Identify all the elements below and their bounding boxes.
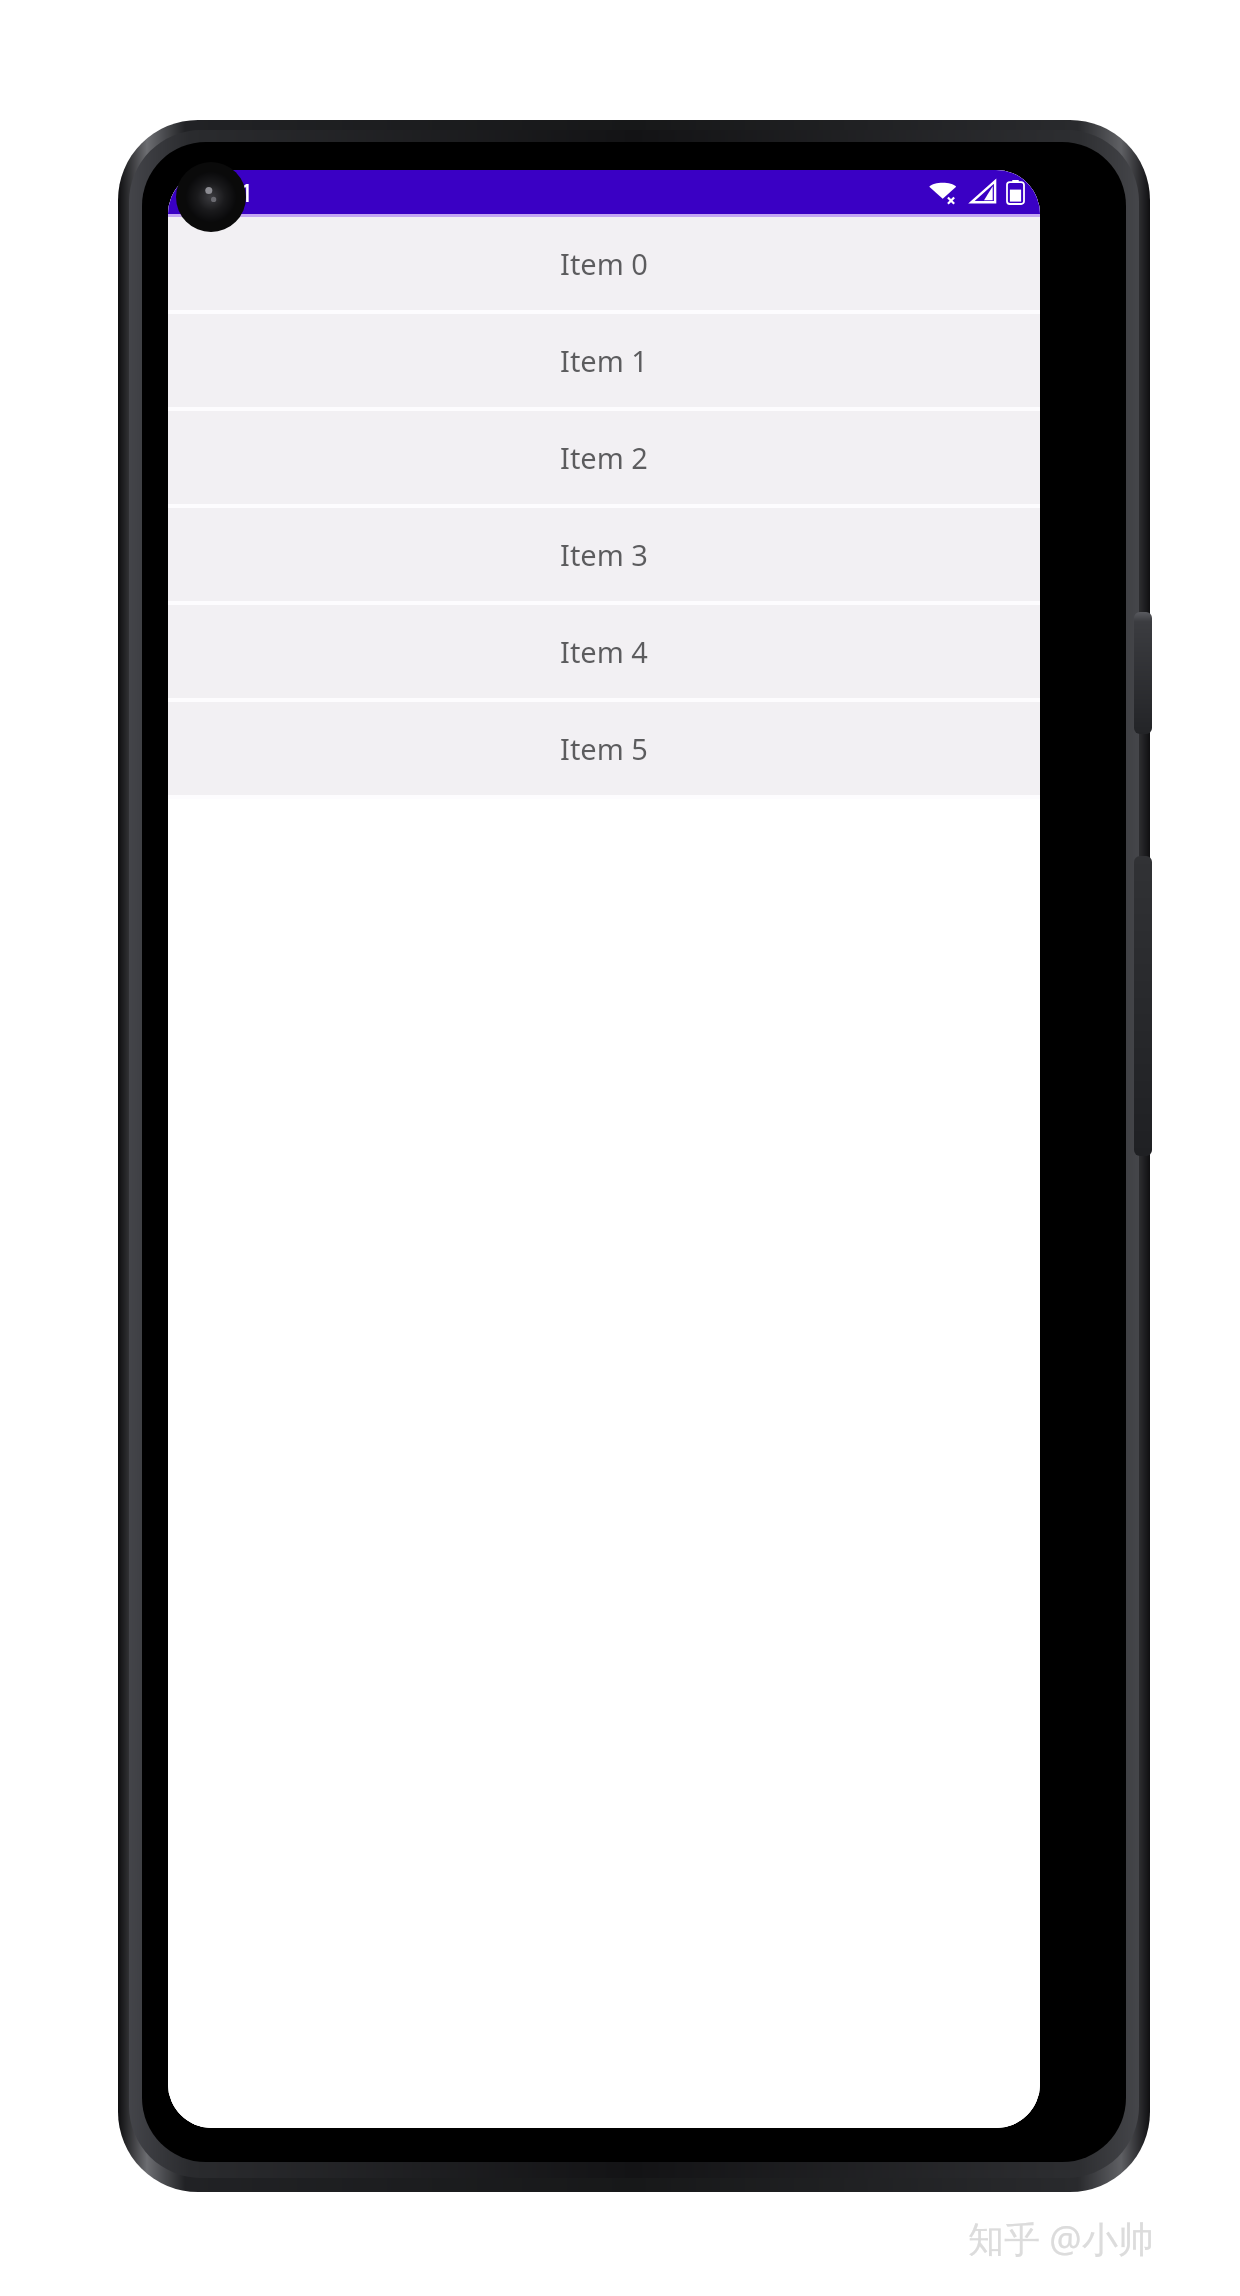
button[interactable]: Item 4 (168, 605, 1040, 702)
staticText: Item 2 (560, 438, 648, 477)
staticText: 11:21 (190, 175, 254, 209)
other: Battery (1007, 180, 1024, 204)
button[interactable]: Item 0 (168, 217, 1040, 314)
other: Wi-Fi off (928, 180, 960, 204)
staticText: 知乎 @小帅 (968, 2214, 1154, 2263)
other: Mobile signal (970, 180, 997, 204)
staticText: Item 3 (560, 535, 648, 574)
staticText: Item 4 (560, 632, 648, 671)
staticText: Item 1 (560, 341, 648, 380)
staticText: Item 5 (560, 729, 648, 768)
staticText: Item 0 (560, 244, 648, 283)
button[interactable]: Item 2 (168, 411, 1040, 508)
button[interactable]: Item 3 (168, 508, 1040, 605)
button[interactable]: Item 1 (168, 314, 1040, 411)
button[interactable]: Item 5 (168, 702, 1040, 799)
